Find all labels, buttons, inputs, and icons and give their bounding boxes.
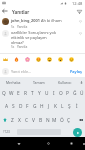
staticText: R [24, 90, 27, 97]
staticText: T [31, 90, 34, 97]
staticText: etkinlik ve paylaşım [11, 35, 47, 40]
staticText: Ah bi ilham [41, 18, 62, 23]
button[interactable]: ozellikler Sonuçlarını yok [0, 30, 85, 49]
button[interactable]: Y [36, 87, 43, 99]
button[interactable]: L [59, 99, 66, 113]
staticText: D [19, 103, 23, 110]
staticText: Y [38, 90, 41, 97]
button[interactable]: Smile emoji [67, 55, 76, 64]
button[interactable]: D [17, 99, 24, 113]
staticText: 5s [11, 45, 15, 49]
button[interactable]: Z [9, 113, 16, 127]
button[interactable]: Back [1, 7, 9, 15]
button[interactable]: Kullanıcı [52, 77, 78, 87]
staticText: G [33, 103, 37, 110]
staticText: İ [76, 103, 78, 110]
staticText: Paylaş [70, 69, 82, 74]
staticText: B [39, 117, 43, 124]
staticText: M [52, 117, 57, 124]
button[interactable]: Shift [0, 113, 9, 127]
button[interactable]: Keyboard [83, 137, 85, 150]
button[interactable]: J [45, 99, 52, 113]
button[interactable]: Voice input [78, 77, 85, 87]
button[interactable]: Surprised emoji [56, 55, 65, 64]
button[interactable]: M [51, 113, 58, 127]
button[interactable]: N [44, 113, 51, 127]
button[interactable]: Crown emoji [1, 55, 10, 64]
button[interactable]: Ç [65, 113, 72, 127]
staticText: S [12, 103, 15, 110]
button[interactable]: Flower emoji [23, 55, 32, 64]
button[interactable]: Like [77, 18, 83, 24]
button[interactable]: Send [72, 127, 83, 137]
button[interactable]: E [15, 87, 22, 99]
button[interactable]: Q [0, 87, 8, 99]
staticText: ?123 [3, 130, 10, 134]
staticText: Merhaba [6, 80, 21, 85]
staticText: F [26, 103, 29, 110]
button[interactable]: K [52, 99, 59, 113]
button[interactable]: Heart eyes emoji [34, 55, 43, 64]
staticText: Kullanıcı [58, 80, 72, 85]
staticText: Yanıtla [17, 45, 28, 49]
button[interactable]: İ [73, 99, 80, 113]
staticText: U [45, 90, 49, 97]
staticText: ozellikler Sonuçlarını yok [11, 30, 57, 35]
button[interactable]: Laughing emoji [45, 55, 54, 64]
button[interactable]: G [31, 99, 38, 113]
staticText: 12:48 [72, 1, 83, 6]
staticText: olmaz? [11, 40, 24, 45]
staticText: Ö [60, 117, 64, 124]
button[interactable]: Ü [78, 87, 85, 99]
button[interactable]: S [10, 99, 17, 113]
button[interactable]: john_king_2001 [0, 18, 85, 29]
staticText: J [48, 103, 50, 110]
button[interactable]: Tamam [26, 77, 52, 87]
button[interactable]: Backspace [76, 113, 85, 127]
button[interactable]: Ş [66, 99, 73, 113]
staticText: K [54, 103, 57, 110]
button[interactable]: B [37, 113, 44, 127]
staticText: Ç [67, 117, 71, 124]
staticText: O [59, 90, 63, 97]
staticText: Ş [68, 103, 71, 110]
staticText: Yanıtla [17, 25, 28, 29]
button[interactable]: Ğ [71, 87, 78, 99]
button[interactable]: T [29, 87, 36, 99]
button[interactable]: Home [37, 137, 59, 150]
staticText: C [25, 117, 29, 124]
button[interactable]: ?123 [0, 127, 13, 137]
staticText: L [61, 103, 64, 110]
staticText: Ü [80, 90, 84, 97]
staticText: W [9, 90, 14, 97]
staticText: H [40, 103, 44, 110]
staticText: V [32, 117, 35, 124]
button[interactable]: R [22, 87, 29, 99]
button[interactable]: U [43, 87, 50, 99]
staticText: Ğ [73, 90, 77, 97]
button[interactable]: W [8, 87, 15, 99]
button[interactable]: Back [0, 137, 37, 150]
button[interactable]: Merhaba [0, 77, 26, 87]
button[interactable]: A [3, 99, 10, 113]
button[interactable]: Fire emoji [12, 55, 21, 64]
button[interactable]: Share [75, 7, 83, 15]
staticText: I [53, 90, 55, 97]
button[interactable]: X [16, 113, 23, 127]
staticText: P [66, 90, 69, 97]
button[interactable]: H [38, 99, 45, 113]
button[interactable]: V [30, 113, 37, 127]
staticText: N [46, 117, 50, 124]
button[interactable]: I [50, 87, 57, 99]
button[interactable]: P [64, 87, 71, 99]
button[interactable]: F [24, 99, 31, 113]
button[interactable]: Like [77, 30, 83, 36]
button[interactable]: Ö [58, 113, 65, 127]
staticText: Yanıtlar [12, 9, 30, 15]
button[interactable]: O [57, 87, 64, 99]
button[interactable]: Paylaş [70, 69, 82, 74]
button[interactable]: C [23, 113, 30, 127]
staticText: john_king_2001 [11, 18, 40, 23]
button[interactable]: Recents [59, 137, 83, 150]
